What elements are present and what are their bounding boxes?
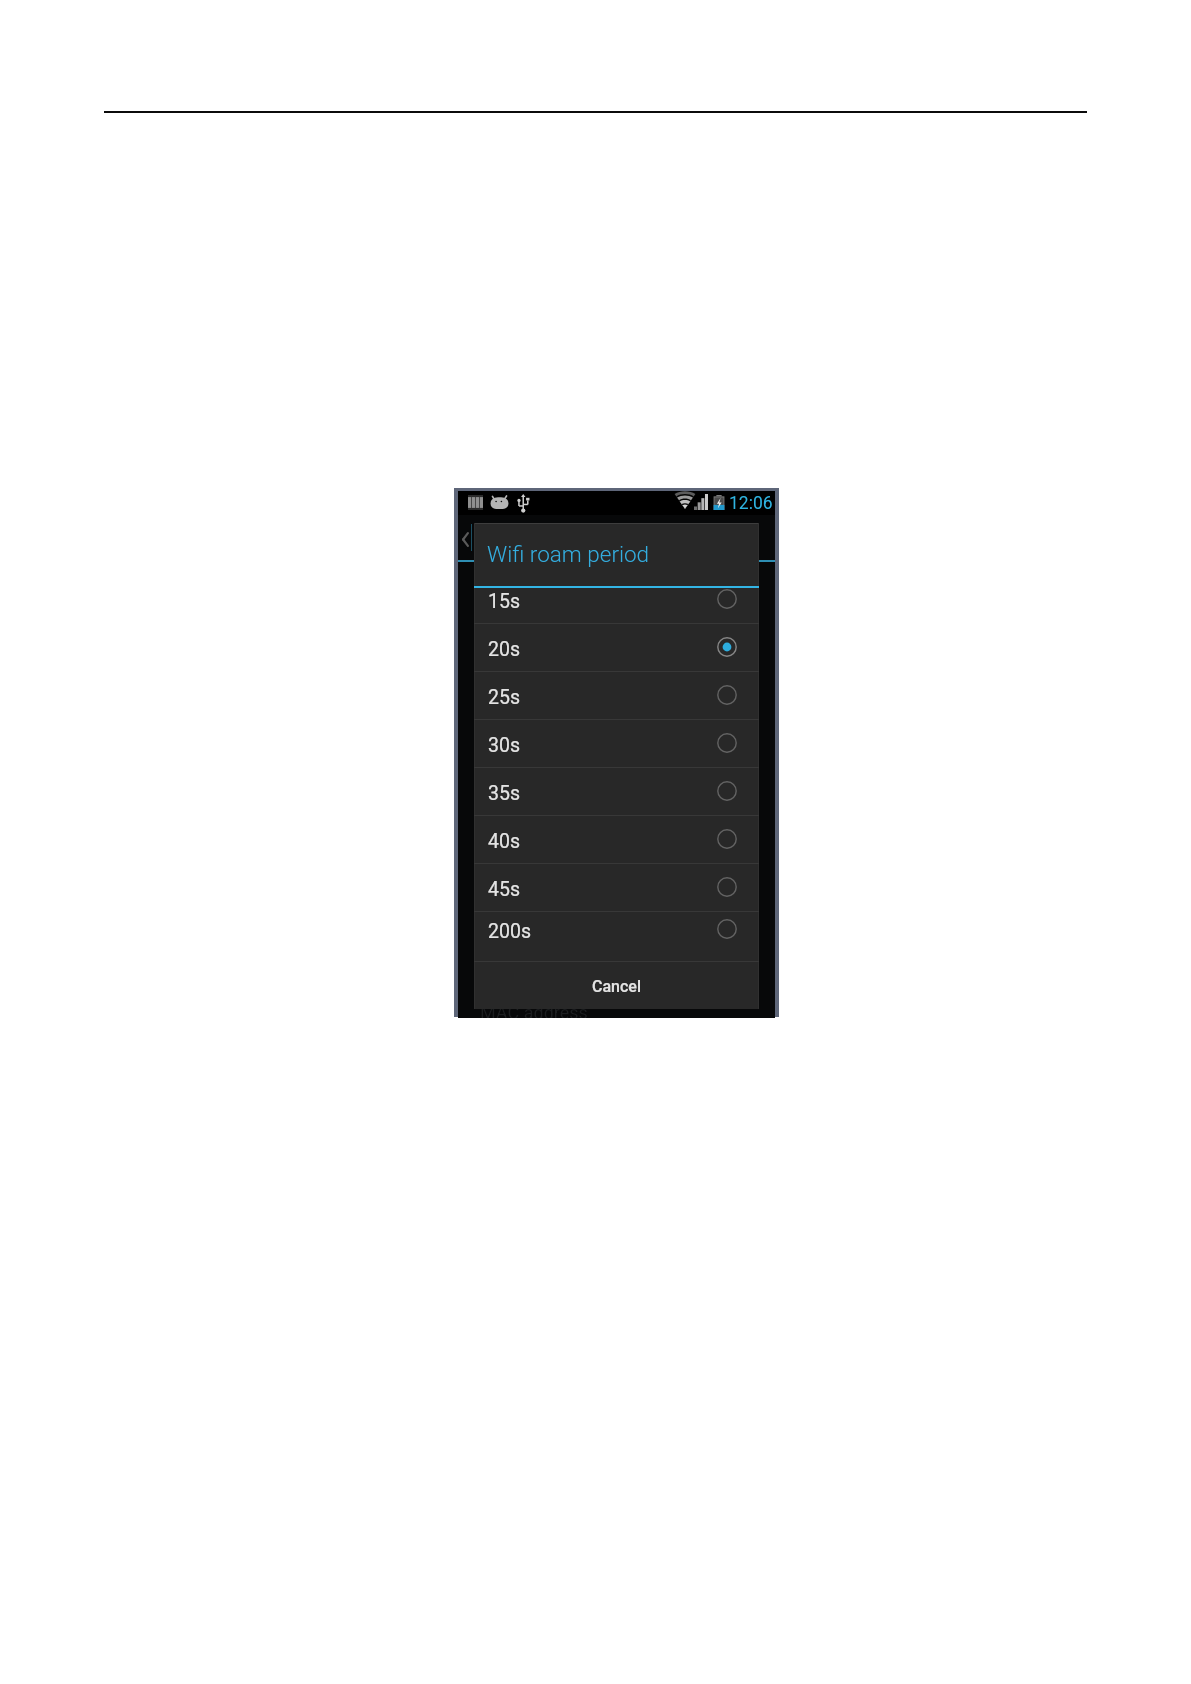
staticText: 12:06 — [729, 493, 773, 514]
staticText: MAC address — [480, 1002, 588, 1018]
staticText: 30s — [488, 734, 520, 757]
button[interactable]: 30s — [474, 719, 759, 767]
button[interactable]: 20s — [474, 623, 759, 671]
button[interactable]: Navigate up — [458, 522, 472, 557]
staticText: 40s — [488, 830, 520, 853]
button[interactable]: 15s — [474, 588, 759, 623]
button[interactable]: 40s — [474, 815, 759, 863]
staticText: 35s — [488, 782, 520, 805]
staticText: 45s — [488, 878, 520, 901]
staticText: Wifi roam period — [487, 541, 650, 567]
staticText: 20s — [488, 638, 520, 661]
button[interactable]: 45s — [474, 863, 759, 911]
button[interactable]: 200s — [474, 911, 759, 947]
button[interactable]: Cancel — [474, 962, 759, 1010]
button[interactable]: 25s — [474, 671, 759, 719]
staticText: 200s — [488, 920, 531, 943]
staticText: 25s — [488, 686, 520, 709]
staticText: Cancel — [592, 977, 641, 996]
staticText: 15s — [488, 590, 520, 613]
button[interactable]: 35s — [474, 767, 759, 815]
